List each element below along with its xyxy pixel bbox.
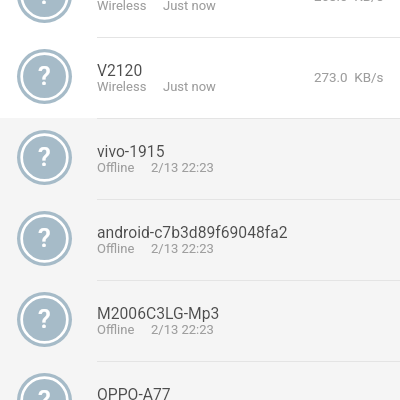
staticText: Just now	[163, 79, 216, 94]
staticText: OPPO-A77	[97, 385, 171, 400]
staticText: 2/13 22:23	[151, 160, 214, 175]
staticText: ?	[38, 385, 51, 400]
staticText: 273.0 KB/s	[314, 70, 384, 86]
button[interactable]: ?	[0, 0, 400, 37]
staticText: 2/13 22:23	[151, 241, 214, 256]
button[interactable]: ?	[0, 280, 400, 361]
button[interactable]: ?	[0, 118, 400, 199]
staticText: ?	[38, 61, 51, 91]
staticText: ?	[38, 142, 51, 172]
staticText: Offline	[97, 241, 135, 256]
staticText: Wireless	[97, 79, 147, 94]
staticText: Offline	[97, 160, 135, 175]
staticText: M2006C3LG-Mp3	[97, 304, 220, 322]
staticText: vivo-1915	[97, 142, 165, 160]
staticText: Wireless	[97, 0, 147, 13]
staticText: ?	[38, 223, 51, 253]
staticText: 268.0 KB/s	[314, 0, 384, 5]
staticText: 2/13 22:23	[151, 322, 214, 337]
staticText: ?	[38, 0, 51, 10]
button[interactable]: ?	[0, 37, 400, 118]
staticText: android-c7b3d89f69048fa2	[97, 223, 288, 241]
button[interactable]: ?	[0, 361, 400, 400]
staticText: V2120	[97, 61, 143, 79]
staticText: ?	[38, 304, 51, 334]
button[interactable]: ?	[0, 199, 400, 280]
staticText: Offline	[97, 322, 135, 337]
staticText: Just now	[163, 0, 216, 13]
